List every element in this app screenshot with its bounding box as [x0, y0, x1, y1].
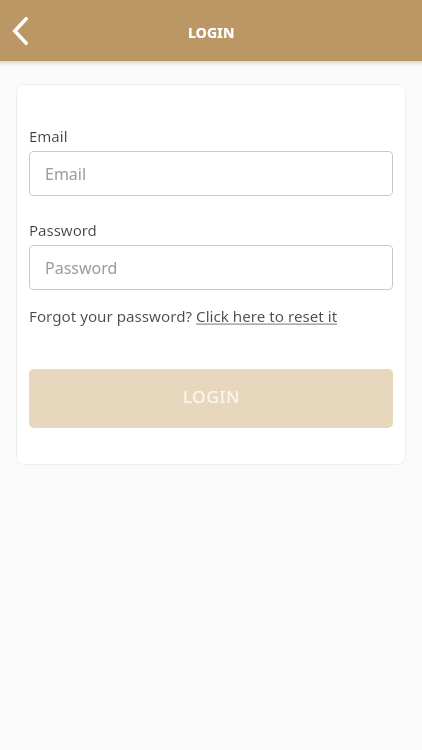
button[interactable]: Password	[29, 245, 393, 290]
staticText: Email	[29, 126, 68, 146]
button[interactable]: Email	[29, 151, 393, 196]
button[interactable]: LOGIN	[29, 369, 393, 428]
staticText: LOGIN	[183, 385, 240, 408]
staticText: Email	[45, 163, 87, 185]
staticText: LOGIN	[188, 23, 235, 42]
button[interactable]: Forgot your password? Click here to rese…	[29, 306, 338, 327]
staticText: Password	[45, 257, 118, 279]
button[interactable]	[2, 13, 38, 49]
staticText: Password	[29, 220, 97, 240]
